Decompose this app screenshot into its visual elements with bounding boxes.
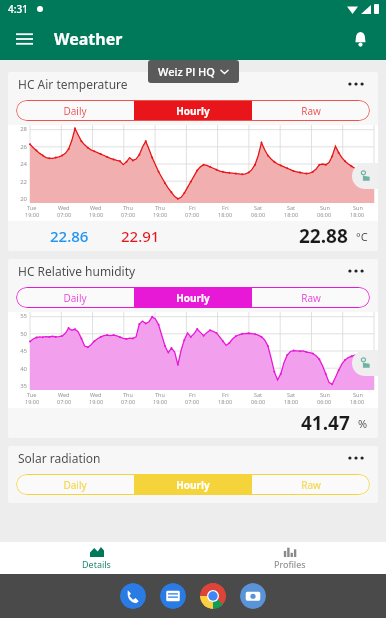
staticText: Sun — [353, 204, 363, 211]
staticText: Raw — [301, 478, 321, 492]
staticText: Hourly — [176, 291, 210, 305]
staticText: 40 — [8, 365, 27, 373]
staticText: 4:31 — [8, 2, 28, 16]
button[interactable]: App — [240, 583, 266, 609]
staticText: 19:00 — [25, 211, 40, 218]
button[interactable]: Hourly — [134, 474, 252, 495]
button[interactable]: App — [160, 583, 186, 609]
staticText: HC Air temperature — [18, 76, 128, 92]
staticText: Wed — [90, 204, 102, 211]
staticText: Thu — [155, 204, 165, 211]
button[interactable]: Open navigation menu — [8, 23, 40, 55]
staticText: Wed — [90, 391, 102, 398]
staticText: 06:00 — [251, 211, 266, 218]
button[interactable]: More options — [344, 72, 368, 96]
staticText: 19:00 — [153, 398, 168, 405]
staticText: 35 — [8, 382, 27, 390]
staticText: 41.47 — [301, 410, 350, 436]
button[interactable]: Weiz Pl HQ — [148, 60, 239, 83]
staticText: Sat — [254, 391, 263, 398]
staticText: 18:00 — [218, 398, 233, 405]
staticText: Daily — [63, 478, 87, 492]
button[interactable]: Hourly — [134, 287, 252, 308]
button[interactable]: App — [120, 583, 146, 609]
button[interactable]: Raw — [252, 287, 370, 308]
staticText: 07:00 — [57, 211, 72, 218]
staticText: 28 — [8, 125, 27, 133]
button[interactable]: Drag chart cursor — [352, 163, 378, 189]
staticText: Weiz Pl HQ — [158, 64, 215, 79]
staticText: 19:00 — [153, 211, 168, 218]
staticText: 07:00 — [185, 211, 200, 218]
staticText: Fri — [222, 391, 229, 398]
button[interactable]: Daily — [16, 287, 134, 308]
staticText: 18:00 — [350, 211, 365, 218]
staticText: 19:00 — [89, 211, 104, 218]
staticText: Daily — [63, 291, 87, 305]
staticText: Tue — [27, 204, 37, 211]
staticText: Sat — [287, 204, 296, 211]
button[interactable]: Chrome — [200, 583, 226, 609]
button[interactable]: Hourly — [134, 100, 252, 121]
staticText: 24 — [8, 160, 27, 168]
staticText: Thu — [123, 391, 133, 398]
staticText: % — [358, 416, 368, 431]
staticText: Sun — [320, 204, 330, 211]
button[interactable]: Notifications — [344, 23, 376, 55]
staticText: 18:00 — [284, 211, 299, 218]
staticText: 50 — [8, 330, 27, 338]
button[interactable]: Daily — [16, 100, 134, 121]
staticText: 55 — [8, 312, 27, 320]
staticText: HC Relative humidity — [18, 263, 136, 279]
staticText: 07:00 — [57, 398, 72, 405]
staticText: 07:00 — [185, 398, 200, 405]
staticText: 06:00 — [317, 398, 332, 405]
button[interactable]: Daily — [16, 474, 134, 495]
staticText: Sat — [254, 204, 263, 211]
staticText: 22.91 — [121, 226, 160, 246]
staticText: 18:00 — [218, 211, 233, 218]
staticText: Tue — [27, 391, 37, 398]
staticText: Hourly — [176, 478, 210, 492]
staticText: Raw — [301, 104, 321, 118]
staticText: 22.88 — [299, 223, 348, 249]
button[interactable]: Profiles — [193, 542, 386, 574]
staticText: 07:00 — [121, 211, 136, 218]
staticText: 26 — [8, 143, 27, 151]
staticText: Weather — [54, 28, 123, 50]
staticText: 19:00 — [89, 398, 104, 405]
staticText: 06:00 — [317, 211, 332, 218]
staticText: Daily — [63, 104, 87, 118]
button[interactable]: More options — [344, 446, 368, 470]
staticText: Solar radiation — [18, 450, 101, 466]
button[interactable]: Raw — [252, 474, 370, 495]
staticText: 06:00 — [251, 398, 266, 405]
staticText: °C — [356, 229, 368, 244]
staticText: 18:00 — [284, 398, 299, 405]
button[interactable]: Details — [0, 542, 193, 574]
staticText: Wed — [58, 204, 70, 211]
button[interactable]: Raw — [252, 100, 370, 121]
staticText: 22.86 — [50, 226, 89, 246]
staticText: 22 — [8, 178, 27, 186]
staticText: 45 — [8, 347, 27, 355]
staticText: Fri — [222, 204, 229, 211]
staticText: 20 — [8, 195, 27, 203]
staticText: Details — [82, 558, 111, 570]
staticText: Fri — [189, 204, 196, 211]
staticText: Raw — [301, 291, 321, 305]
staticText: Thu — [155, 391, 165, 398]
staticText: Wed — [58, 391, 70, 398]
staticText: Fri — [189, 391, 196, 398]
staticText: 18:00 — [350, 398, 365, 405]
staticText: Thu — [123, 204, 133, 211]
staticText: Sun — [353, 391, 363, 398]
staticText: Profiles — [274, 558, 306, 570]
staticText: Sat — [287, 391, 296, 398]
button[interactable]: More options — [344, 259, 368, 283]
staticText: 19:00 — [25, 398, 40, 405]
staticText: Sun — [320, 391, 330, 398]
button[interactable]: Drag chart cursor — [352, 350, 378, 376]
staticText: 07:00 — [121, 398, 136, 405]
staticText: Hourly — [176, 104, 210, 118]
